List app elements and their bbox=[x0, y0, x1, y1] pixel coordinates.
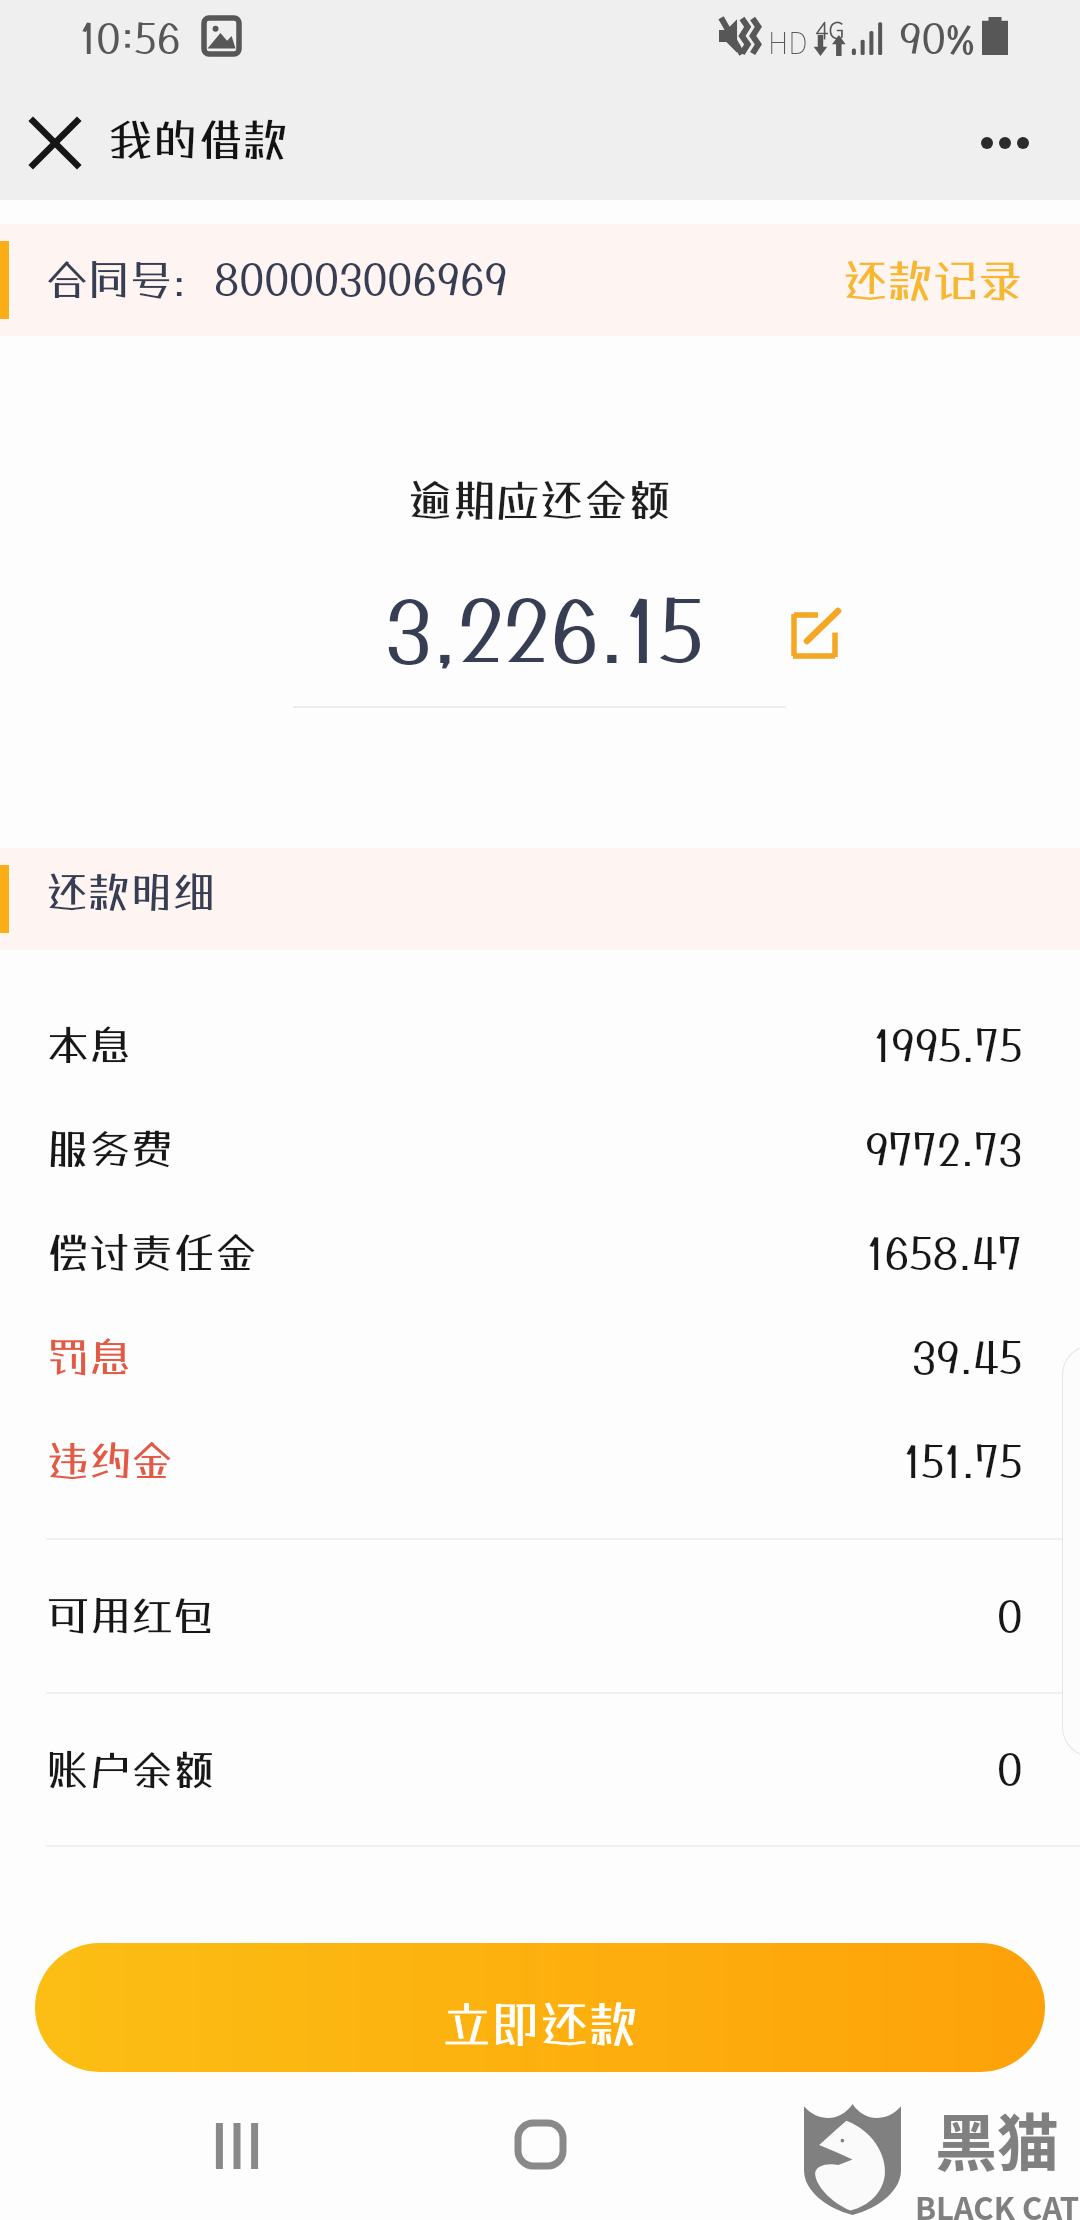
staticText: 黑猫 bbox=[935, 2094, 1060, 2184]
staticText: 4G bbox=[816, 11, 845, 46]
staticText: 1658.47 bbox=[867, 1228, 1023, 1279]
staticText: 偿讨责任金 bbox=[47, 1228, 258, 1278]
staticText: 立即还款 bbox=[442, 1995, 639, 2053]
staticText: 合同号：800003006969 bbox=[46, 255, 508, 305]
staticText: 9772.73 bbox=[865, 1124, 1023, 1175]
button[interactable]: Home bbox=[498, 2102, 582, 2186]
button[interactable]: Recent apps bbox=[195, 2104, 279, 2188]
staticText: 还款记录 bbox=[843, 254, 1024, 307]
staticText: 10:56 bbox=[80, 14, 181, 62]
staticText: 罚息 bbox=[47, 1332, 132, 1382]
button[interactable]: Close bbox=[18, 106, 92, 180]
button[interactable]: 罚息 bbox=[0, 1305, 1080, 1409]
button[interactable]: 还款记录 bbox=[795, 236, 1080, 325]
staticText: 可用红包 bbox=[47, 1591, 216, 1641]
staticText: 违约金 bbox=[47, 1436, 174, 1486]
staticText: 账户余额 bbox=[47, 1745, 216, 1795]
staticText: 还款明细 bbox=[46, 867, 215, 917]
button[interactable]: Edit amount bbox=[789, 610, 839, 660]
staticText: 90% bbox=[899, 14, 976, 62]
staticText: 0 bbox=[997, 1744, 1023, 1795]
staticText: BLACK CAT bbox=[915, 2184, 1080, 2220]
button[interactable]: 本息 bbox=[0, 993, 1080, 1097]
staticText: HD bbox=[768, 20, 808, 62]
staticText: 3,226.15 bbox=[385, 581, 704, 680]
staticText: 我的借款 bbox=[108, 113, 289, 166]
staticText: 39.45 bbox=[912, 1332, 1023, 1383]
button[interactable]: 偿讨责任金 bbox=[0, 1201, 1080, 1305]
button[interactable]: 立即还款 bbox=[35, 1943, 1045, 2072]
button[interactable]: 违约金 bbox=[0, 1409, 1080, 1513]
staticText: 逾期应还金额 bbox=[408, 474, 672, 526]
staticText: 0 bbox=[997, 1591, 1023, 1642]
button[interactable]: 服务费 bbox=[0, 1097, 1080, 1201]
button[interactable]: More options bbox=[965, 103, 1045, 183]
staticText: 本息 bbox=[47, 1020, 132, 1070]
staticText: 1995.75 bbox=[874, 1020, 1023, 1071]
button[interactable]: 可用红包 bbox=[0, 1540, 1080, 1692]
button[interactable]: 账户余额 bbox=[0, 1694, 1080, 1845]
staticText: 服务费 bbox=[47, 1124, 174, 1174]
staticText: 151.75 bbox=[904, 1436, 1023, 1487]
